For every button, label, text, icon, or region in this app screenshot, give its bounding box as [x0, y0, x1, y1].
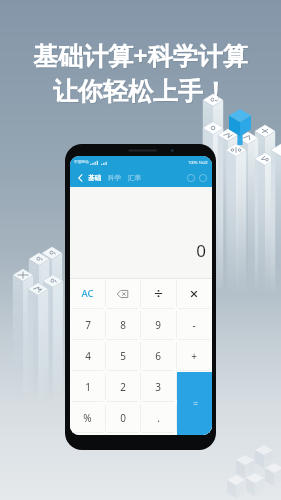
staticText: 5 — [120, 349, 126, 363]
staticText: 100% 16:22 — [188, 160, 208, 165]
button[interactable]: 科学 — [108, 174, 121, 182]
staticText: - — [192, 318, 196, 332]
button[interactable] — [140, 278, 176, 309]
button[interactable]: 汇率 — [128, 174, 141, 182]
staticText: 中国移动 — [74, 160, 89, 165]
button[interactable]: 9 — [140, 309, 176, 340]
button[interactable]: 0 — [105, 402, 140, 433]
staticText: 0 — [120, 411, 126, 425]
button[interactable]: . — [140, 402, 176, 433]
staticText: 基础 — [88, 174, 101, 182]
staticText: 汇率 — [128, 174, 141, 182]
staticText: 6 — [155, 349, 161, 363]
staticText: 2 — [120, 380, 126, 394]
staticText: 基础计算+科学计算 — [34, 39, 249, 73]
button[interactable]: 3 — [140, 371, 176, 402]
button[interactable] — [176, 371, 212, 402]
staticText: 让你轻松上手！ — [53, 76, 228, 107]
button[interactable]: History — [186, 173, 195, 182]
staticText: = — [193, 398, 198, 409]
staticText: % — [83, 411, 92, 425]
staticText: 基础计算+科学计算 — [33, 38, 248, 72]
button[interactable]: % — [70, 402, 105, 433]
button[interactable]: 8 — [105, 309, 140, 340]
button[interactable]: Back — [74, 172, 86, 184]
staticText: 让你轻松上手！ — [54, 77, 229, 108]
button[interactable]: - — [176, 309, 212, 340]
button[interactable]: 2 — [105, 371, 140, 402]
button[interactable]: 1 — [70, 371, 105, 402]
button[interactable] — [176, 402, 212, 433]
staticText: 7 — [85, 318, 91, 332]
button[interactable]: + — [176, 340, 212, 371]
button[interactable] — [176, 278, 212, 309]
button[interactable] — [105, 278, 140, 309]
staticText: 3 — [155, 380, 161, 394]
staticText: 8 — [120, 318, 126, 332]
staticText: 0 — [196, 239, 206, 262]
staticText: AC — [81, 287, 94, 300]
button[interactable]: 6 — [140, 340, 176, 371]
button[interactable]: 4 — [70, 340, 105, 371]
staticText: + — [191, 349, 197, 363]
button[interactable]: 基础 — [88, 174, 101, 182]
button[interactable]: Settings — [198, 173, 207, 182]
staticText: 4 — [85, 349, 91, 363]
staticText: 9 — [155, 318, 161, 332]
staticText: 科学 — [108, 174, 121, 182]
button[interactable]: 5 — [105, 340, 140, 371]
button[interactable]: = — [177, 372, 212, 435]
button[interactable]: 7 — [70, 309, 105, 340]
staticText: . — [157, 411, 160, 425]
button[interactable]: AC — [70, 278, 105, 309]
staticText: 1 — [85, 380, 91, 394]
